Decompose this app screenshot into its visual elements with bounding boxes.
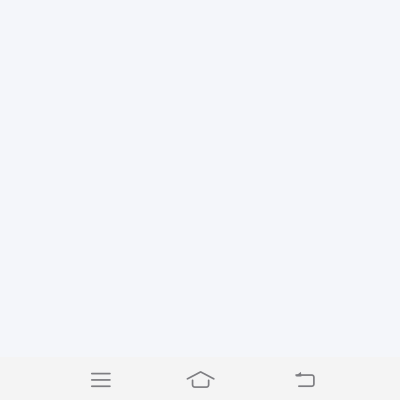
button[interactable]: Recent apps [64, 357, 136, 400]
button[interactable]: Home [164, 357, 236, 400]
button[interactable]: Back [269, 357, 341, 400]
